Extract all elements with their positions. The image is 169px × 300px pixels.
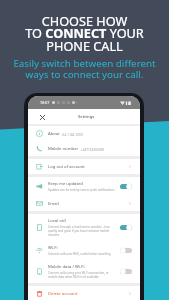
staticText: Mobile number: [48, 146, 79, 152]
button[interactable]: Toggle off: [120, 268, 132, 275]
staticText: Email: [48, 201, 59, 207]
staticText: Connect calls using your Wi-Fi connectio…: [48, 271, 117, 279]
button[interactable]: Toggle on: [120, 224, 132, 231]
button[interactable]: Keep me updated: [28, 177, 140, 196]
button[interactable]: Close: [36, 111, 48, 123]
button[interactable]: Log out of account: [28, 159, 140, 174]
staticText: Local call: [48, 218, 66, 224]
staticText: Connect calls over WiFi, useful when tra…: [48, 252, 111, 256]
button[interactable]: Email: [28, 196, 140, 211]
staticText: Keep me updated: [48, 181, 83, 187]
staticText: Mobile data / Wi-Fi: [48, 264, 85, 270]
button[interactable]: Wi-Fi: [28, 241, 140, 260]
staticText: Settings: [78, 114, 95, 120]
button[interactable]: About: [28, 126, 140, 141]
staticText: Easily switch between different ways to …: [0, 57, 169, 81]
staticText: 4.4.1 (44-1201): [62, 133, 84, 137]
staticText: Delete account: [48, 291, 78, 297]
staticText: Updates can be sent by sms or push notif…: [48, 188, 115, 192]
button[interactable]: Mobile data / Wi-Fi: [28, 260, 140, 283]
staticText: Log out of account: [48, 164, 85, 170]
staticText: 10:57: [40, 100, 50, 105]
staticText: Wi-Fi: [48, 245, 58, 251]
staticText: +447123456789: [81, 148, 105, 152]
button[interactable]: Local call: [28, 214, 140, 241]
button[interactable]: Mobile number: [28, 141, 140, 156]
button[interactable]: Toggle on: [120, 183, 132, 190]
button[interactable]: Delete account: [28, 286, 140, 300]
staticText: About: [48, 131, 60, 137]
staticText: Connect through a local access number – …: [48, 225, 117, 237]
button[interactable]: Toggle off: [120, 247, 132, 254]
staticText: CHOOSE HOW TO CONNECT YOUR PHONE CALL: [0, 12, 169, 55]
